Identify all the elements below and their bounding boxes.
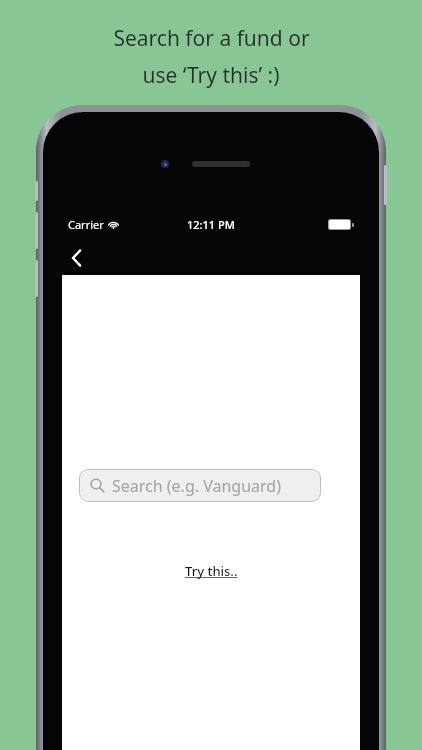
staticText: Carrier <box>68 217 104 232</box>
button[interactable]: Search (e.g. Vanguard) <box>79 469 321 502</box>
staticText: use ‘Try this’ :) <box>142 61 280 90</box>
button[interactable]: Try this.. <box>179 559 244 583</box>
staticText: Search for a fund or <box>113 24 310 53</box>
staticText: Try this.. <box>185 562 238 580</box>
staticText: Search (e.g. Vanguard) <box>112 475 281 497</box>
button[interactable]: Back <box>53 234 101 282</box>
staticText: 12:11 PM <box>187 217 235 232</box>
